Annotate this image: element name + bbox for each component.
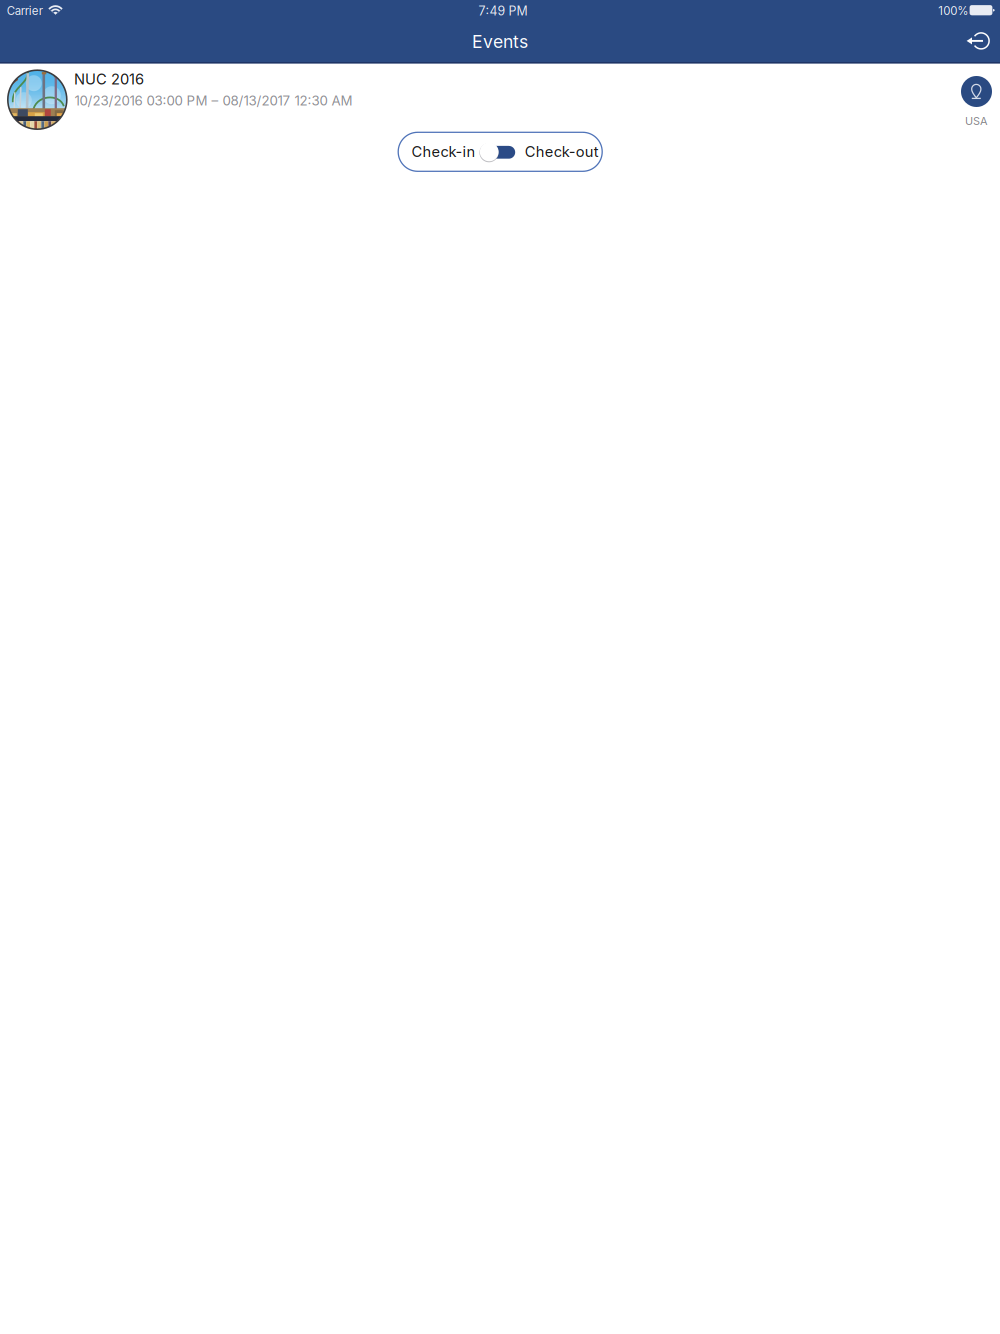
button[interactable]: Check-in [398,132,602,171]
button[interactable]: Log out [955,19,1000,63]
staticText: 7:49 PM [478,3,527,18]
staticText: 100% [938,4,968,18]
staticText: Check-out [525,143,599,161]
button[interactable]: NUC 2016 [0,64,930,136]
button[interactable]: USA [950,72,1000,130]
staticText: Events [472,31,528,52]
staticText: Carrier [7,4,43,18]
staticText: NUC 2016 [74,70,144,88]
staticText: 10/23/2016 03:00 PM – 08/13/2017 12:30 A… [74,92,352,109]
staticText: USA [965,114,988,128]
staticText: Check-in [412,143,476,161]
